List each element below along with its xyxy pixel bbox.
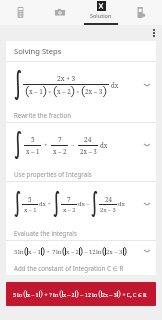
staticText: 2x – 3 <box>106 248 123 256</box>
staticText: x – 2 <box>63 291 75 298</box>
staticText: 24 <box>84 135 92 144</box>
staticText: ln <box>17 291 23 298</box>
staticText: 12 <box>85 291 92 298</box>
staticText: 7 <box>49 291 53 298</box>
other: Expand step <box>138 241 156 261</box>
staticText: + <box>41 141 51 149</box>
staticText: x – 1 <box>26 147 40 155</box>
staticText: 7 <box>58 135 62 144</box>
staticText: x – 1 <box>24 206 37 214</box>
staticText: – <box>83 248 89 256</box>
staticText: + <box>45 248 52 256</box>
staticText: 5 <box>14 248 18 256</box>
other: Expand step <box>138 123 156 167</box>
staticText: Solving Steps <box>14 46 62 56</box>
staticText: – <box>68 141 78 149</box>
button[interactable]: Saved <box>121 0 162 25</box>
other: Expand step <box>138 182 156 226</box>
other: Expand step <box>138 62 156 108</box>
staticText: x – 1 <box>27 291 39 298</box>
staticText: + C, C ∈ R <box>121 291 147 298</box>
button[interactable]: 5 <box>6 282 156 306</box>
staticText: – <box>79 291 85 298</box>
staticText: 2x – 3 <box>100 206 116 214</box>
button[interactable]: 5 <box>6 241 156 261</box>
staticText: dx <box>118 200 125 208</box>
staticText: x – 1 <box>28 248 41 256</box>
staticText: 5 <box>13 291 17 298</box>
button[interactable]: More options <box>146 25 162 41</box>
staticText: Evaluate the integrals <box>14 229 77 237</box>
staticText: x – 2 <box>63 206 76 214</box>
staticText: ln <box>18 248 24 256</box>
staticText: + <box>43 291 49 298</box>
staticText: 2x + 3 <box>57 74 76 83</box>
staticText: dx <box>78 200 85 208</box>
staticText: + <box>46 200 53 208</box>
staticText: 2x – 3 <box>102 291 117 298</box>
staticText: Use properties of Integrals <box>14 170 92 178</box>
staticText: ln <box>92 291 98 298</box>
staticText: x – 2 <box>57 87 71 96</box>
staticText: Add the constant of Integration C ∈ R <box>14 264 124 272</box>
staticText: x – 2 <box>53 147 67 155</box>
staticText: 7 <box>52 248 56 256</box>
button[interactable]: 2x + 3 <box>6 62 156 108</box>
staticText: x – 1 <box>29 87 43 96</box>
button[interactable]: Camera <box>40 0 80 25</box>
button[interactable]: Solution <box>80 0 121 25</box>
staticText: ln <box>56 248 62 256</box>
button[interactable]: 5 <box>6 182 156 226</box>
staticText: 2x – 3 <box>80 147 97 155</box>
staticText: x – 2 <box>66 248 79 256</box>
staticText: dx <box>39 200 46 208</box>
button[interactable]: 5 <box>6 123 156 167</box>
staticText: × <box>47 88 53 95</box>
staticText: 24 <box>105 195 112 203</box>
staticText: Solution <box>90 12 112 19</box>
button[interactable]: Calculator <box>0 0 40 25</box>
staticText: Rewrite the fraction <box>14 111 72 119</box>
staticText: dx <box>100 141 108 149</box>
staticText: – <box>85 200 91 208</box>
staticText: 5 <box>31 135 35 144</box>
staticText: ln <box>53 291 59 298</box>
staticText: 12 <box>89 248 96 256</box>
staticText: 2x – 3 <box>85 87 103 96</box>
staticText: 5 <box>28 195 32 203</box>
staticText: 7 <box>67 195 71 203</box>
staticText: dx <box>111 81 119 89</box>
staticText: ln <box>96 248 102 256</box>
staticText: × <box>75 88 81 95</box>
